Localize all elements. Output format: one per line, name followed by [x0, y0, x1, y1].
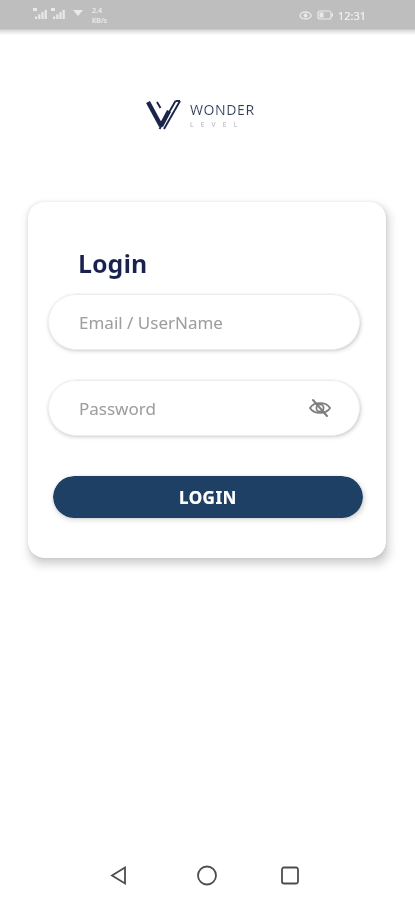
button[interactable]	[106, 863, 132, 889]
button[interactable]	[277, 863, 303, 889]
staticText: Login	[78, 246, 148, 280]
button[interactable]	[194, 863, 220, 889]
staticText: Email / UserName	[79, 311, 223, 334]
button[interactable]	[308, 396, 332, 420]
staticText: 2.4	[92, 6, 102, 16]
staticText: L E V E L	[190, 120, 240, 129]
staticText: Password	[79, 397, 156, 420]
staticText: WONDER	[190, 100, 255, 119]
staticText: KB/s	[92, 16, 107, 26]
button[interactable]: Password	[48, 380, 360, 436]
button[interactable]: Email / UserName	[48, 294, 360, 350]
button[interactable]: LOGIN	[53, 476, 363, 518]
staticText: 12:31	[338, 8, 367, 23]
staticText: LOGIN	[179, 486, 237, 509]
